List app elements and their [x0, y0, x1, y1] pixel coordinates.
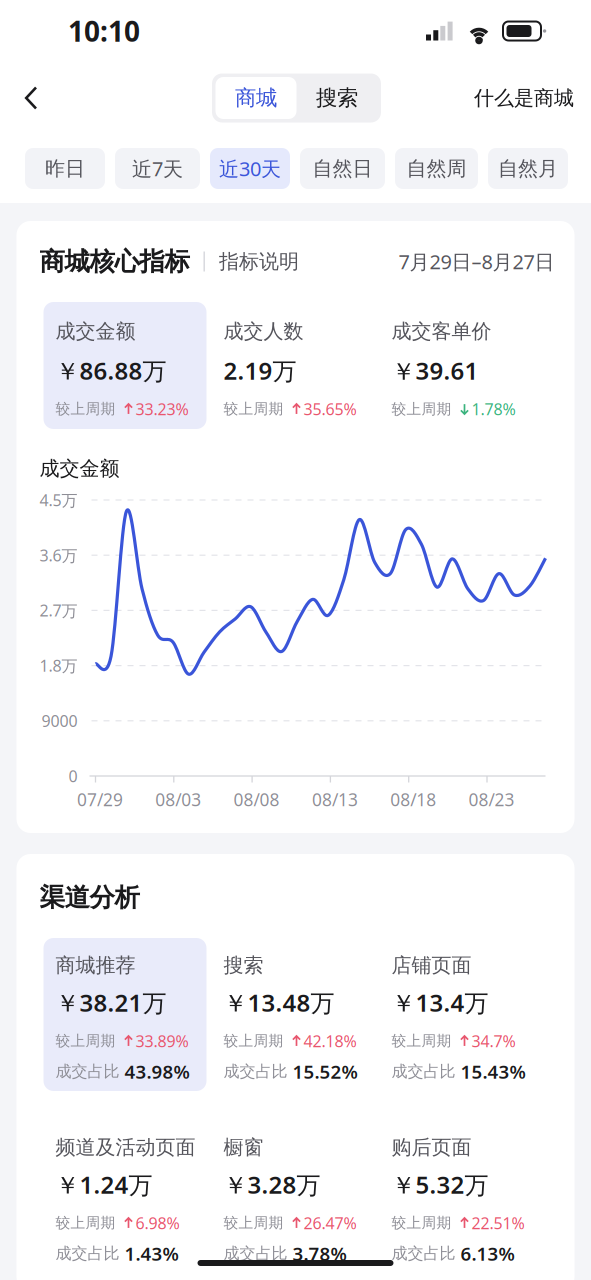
button[interactable]: 昨日 — [25, 148, 105, 189]
staticText: 较上周期 — [391, 1214, 451, 1232]
staticText: 较上周期 — [55, 1032, 115, 1050]
staticText: 1.43% — [124, 1241, 178, 1266]
staticText: ￥5.32万 — [391, 1169, 488, 1200]
staticText: 33.23% — [135, 398, 188, 419]
staticText: 昨日 — [45, 156, 85, 181]
staticText: 0 — [68, 765, 77, 787]
staticText: 频道及活动页面 — [55, 1135, 195, 1160]
staticText: 35.65% — [303, 398, 356, 419]
staticText: 33.89% — [135, 1030, 188, 1051]
staticText: 15.43% — [460, 1059, 525, 1084]
staticText: 9000 — [41, 710, 77, 731]
staticText: 成交占比 — [223, 1062, 287, 1081]
staticText: 商城 — [235, 85, 277, 111]
staticText: 商城核心指标 — [39, 246, 189, 277]
staticText: 6.98% — [135, 1212, 179, 1233]
staticText: 店铺页面 — [391, 953, 471, 978]
staticText: 1.78% — [471, 398, 515, 420]
staticText: 22.51% — [471, 1212, 524, 1233]
staticText: 较上周期 — [223, 400, 283, 418]
staticText: 成交人数 — [223, 319, 303, 344]
staticText: 指标说明 — [219, 249, 299, 274]
staticText: 1.8万 — [39, 655, 77, 676]
staticText: ￥3.28万 — [223, 1169, 320, 1200]
staticText: 3.6万 — [39, 545, 77, 566]
staticText: 自然月 — [498, 156, 558, 181]
button[interactable]: 搜索 — [296, 77, 377, 119]
staticText: 成交占比 — [223, 1244, 287, 1263]
button[interactable]: 近30天 — [210, 148, 290, 189]
button[interactable]: 自然日 — [300, 148, 385, 189]
staticText: 搜索 — [223, 953, 263, 978]
staticText: 10:10 — [68, 12, 140, 50]
staticText: 08/13 — [312, 788, 358, 811]
staticText: 购后页面 — [391, 1135, 471, 1160]
button[interactable]: 返回 — [1, 72, 62, 123]
staticText: 成交占比 — [391, 1244, 455, 1263]
button[interactable]: 近7天 — [115, 148, 200, 189]
staticText: 成交占比 — [55, 1062, 119, 1081]
staticText: 26.47% — [303, 1212, 356, 1233]
staticText: ￥86.88万 — [55, 355, 166, 386]
staticText: 6.13% — [460, 1241, 514, 1266]
button[interactable]: 自然周 — [395, 148, 478, 189]
staticText: 成交金额 — [39, 456, 119, 481]
staticText: 07/29 — [77, 788, 123, 811]
staticText: 橱窗 — [223, 1135, 263, 1160]
staticText: 较上周期 — [223, 1214, 283, 1232]
staticText: 渠道分析 — [39, 882, 139, 913]
staticText: ￥13.48万 — [223, 987, 334, 1018]
staticText: 2.19万 — [223, 355, 296, 386]
staticText: 自然周 — [406, 156, 466, 181]
staticText: 4.5万 — [39, 489, 77, 511]
staticText: 较上周期 — [55, 400, 115, 418]
staticText: 搜索 — [316, 85, 358, 111]
staticText: 较上周期 — [55, 1214, 115, 1232]
staticText: 什么是商城 — [474, 86, 574, 110]
staticText: ￥39.61 — [391, 355, 478, 387]
staticText: 成交占比 — [391, 1062, 455, 1081]
staticText: 较上周期 — [391, 1032, 451, 1050]
staticText: 成交客单价 — [391, 319, 491, 344]
button[interactable]: 自然月 — [488, 148, 568, 189]
staticText: ￥1.24万 — [55, 1169, 152, 1200]
staticText: 2.7万 — [39, 600, 77, 621]
staticText: 08/18 — [390, 788, 436, 811]
staticText: 自然日 — [312, 156, 372, 181]
staticText: 08/03 — [155, 788, 201, 811]
staticText: ￥38.21万 — [55, 987, 166, 1018]
button[interactable]: 商城 — [215, 77, 296, 119]
staticText: 较上周期 — [223, 1032, 283, 1050]
staticText: 08/23 — [468, 788, 514, 811]
staticText: 15.52% — [292, 1059, 357, 1084]
staticText: 34.7% — [471, 1030, 515, 1051]
staticText: 成交金额 — [55, 319, 135, 344]
staticText: 43.98% — [124, 1059, 189, 1084]
staticText: 成交占比 — [55, 1244, 119, 1263]
button[interactable]: 什么是商城 — [456, 74, 591, 122]
staticText: 近7天 — [132, 155, 183, 182]
staticText: 3.78% — [292, 1241, 346, 1266]
staticText: 7月29日–8月27日 — [398, 248, 554, 275]
staticText: 近30天 — [219, 155, 281, 182]
staticText: 较上周期 — [391, 400, 451, 418]
staticText: 42.18% — [303, 1030, 356, 1051]
staticText: ￥13.4万 — [391, 987, 488, 1018]
staticText: 08/08 — [234, 788, 280, 811]
staticText: 商城推荐 — [55, 953, 135, 978]
